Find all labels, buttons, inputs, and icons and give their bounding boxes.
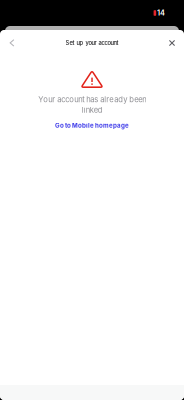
staticText: Set up your account bbox=[65, 39, 118, 46]
staticText: Go to Mobile homepage bbox=[55, 122, 129, 129]
staticText: 14 bbox=[157, 9, 165, 17]
staticText: Your account has already been linked bbox=[38, 95, 146, 115]
button[interactable]: Back bbox=[1, 33, 23, 53]
button[interactable]: Go to Mobile homepage bbox=[55, 122, 129, 129]
button[interactable]: Close bbox=[161, 33, 183, 53]
